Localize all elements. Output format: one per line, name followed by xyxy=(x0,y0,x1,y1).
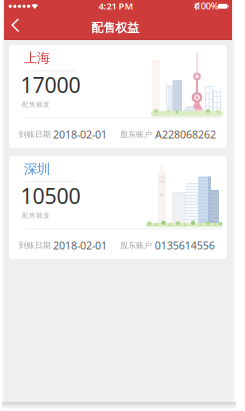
staticText: 配售额度 xyxy=(22,100,50,109)
staticText: 股东账户 xyxy=(120,240,152,250)
staticText: 股东账户 xyxy=(120,129,152,139)
button[interactable]: Back xyxy=(2,12,28,38)
staticText: 配售权益 xyxy=(91,20,139,35)
staticText: 到账日期 xyxy=(19,129,51,139)
staticText: 100% xyxy=(196,0,219,12)
staticText: 配售额度 xyxy=(22,211,50,220)
staticText: 0135614556 xyxy=(155,238,215,252)
staticText: 上海 xyxy=(24,50,50,66)
staticText: 4:21 PM xyxy=(98,0,133,12)
staticText: 2018-02-01 xyxy=(53,238,107,252)
staticText: 深圳 xyxy=(24,161,50,177)
staticText: 17000 xyxy=(20,70,80,99)
staticText: 10500 xyxy=(20,181,80,210)
staticText: A228068262 xyxy=(155,127,216,141)
staticText: 到账日期 xyxy=(19,240,51,250)
staticText: 2018-02-01 xyxy=(53,127,107,141)
